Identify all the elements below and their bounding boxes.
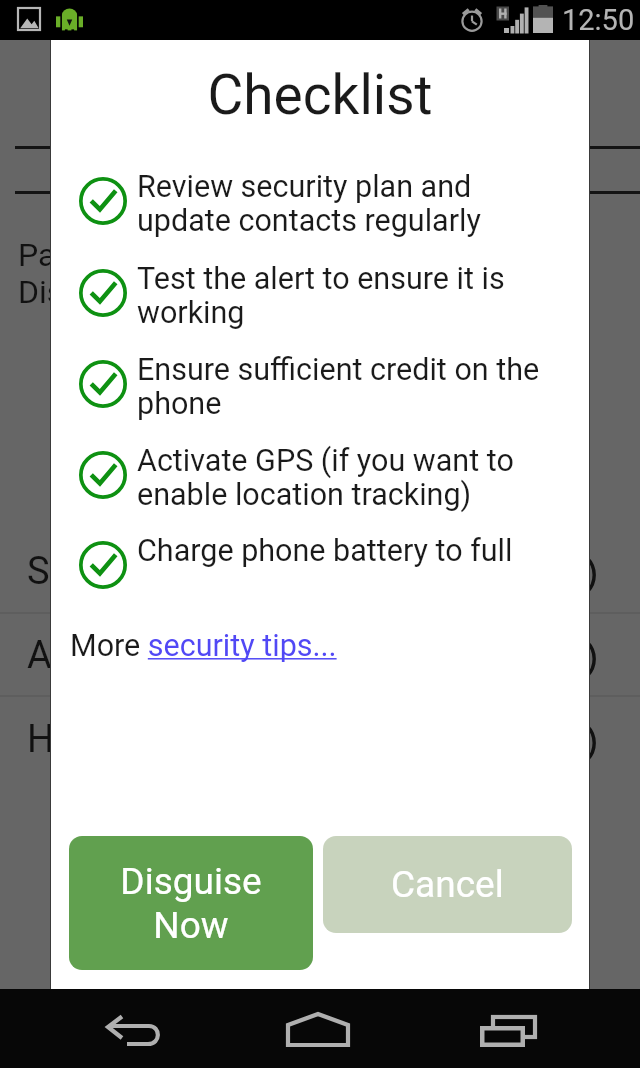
staticText: Review security plan and update contacts… xyxy=(137,169,549,238)
button[interactable]: More security tips... xyxy=(70,628,337,664)
button[interactable]: Hide app icon xyxy=(0,713,640,765)
staticText: Ensure sufficient credit on the phone xyxy=(137,352,549,421)
button[interactable]: Disguise Now xyxy=(69,836,313,970)
button[interactable]: Ensure sufficient credit on the phone xyxy=(51,352,589,421)
button[interactable]: Send SMS alerts xyxy=(0,545,640,597)
button[interactable]: Back xyxy=(87,989,179,1068)
staticText: Alert sound on xyxy=(27,633,274,678)
button[interactable]: Alert sound on xyxy=(0,629,640,681)
staticText: Disguise Now xyxy=(120,860,262,947)
staticText: Charge phone battery to full xyxy=(137,533,549,569)
staticText: Test the alert to ensure it is working xyxy=(137,261,549,330)
staticText: Hide app icon xyxy=(27,717,259,762)
button[interactable]: Cancel xyxy=(323,836,572,933)
staticText: Panic Button Alert xyxy=(18,236,276,274)
staticText: More security tips... xyxy=(70,628,337,664)
staticText: Activate GPS (if you want to enable loca… xyxy=(137,443,549,512)
button[interactable]: Activate GPS (if you want to enable loca… xyxy=(51,443,589,512)
button[interactable]: Charge phone battery to full xyxy=(51,533,589,591)
button[interactable]: Review security plan and update contacts… xyxy=(51,169,589,238)
staticText: 12:50 xyxy=(562,3,635,37)
staticText: Checklist xyxy=(51,63,589,127)
staticText: Disguise the app xyxy=(18,273,255,311)
staticText: Send SMS alerts xyxy=(27,549,306,594)
button[interactable]: Test the alert to ensure it is working xyxy=(51,261,589,330)
button[interactable]: Home xyxy=(274,989,366,1068)
staticText: Cancel xyxy=(391,863,504,906)
button[interactable]: Recent apps xyxy=(462,989,554,1068)
